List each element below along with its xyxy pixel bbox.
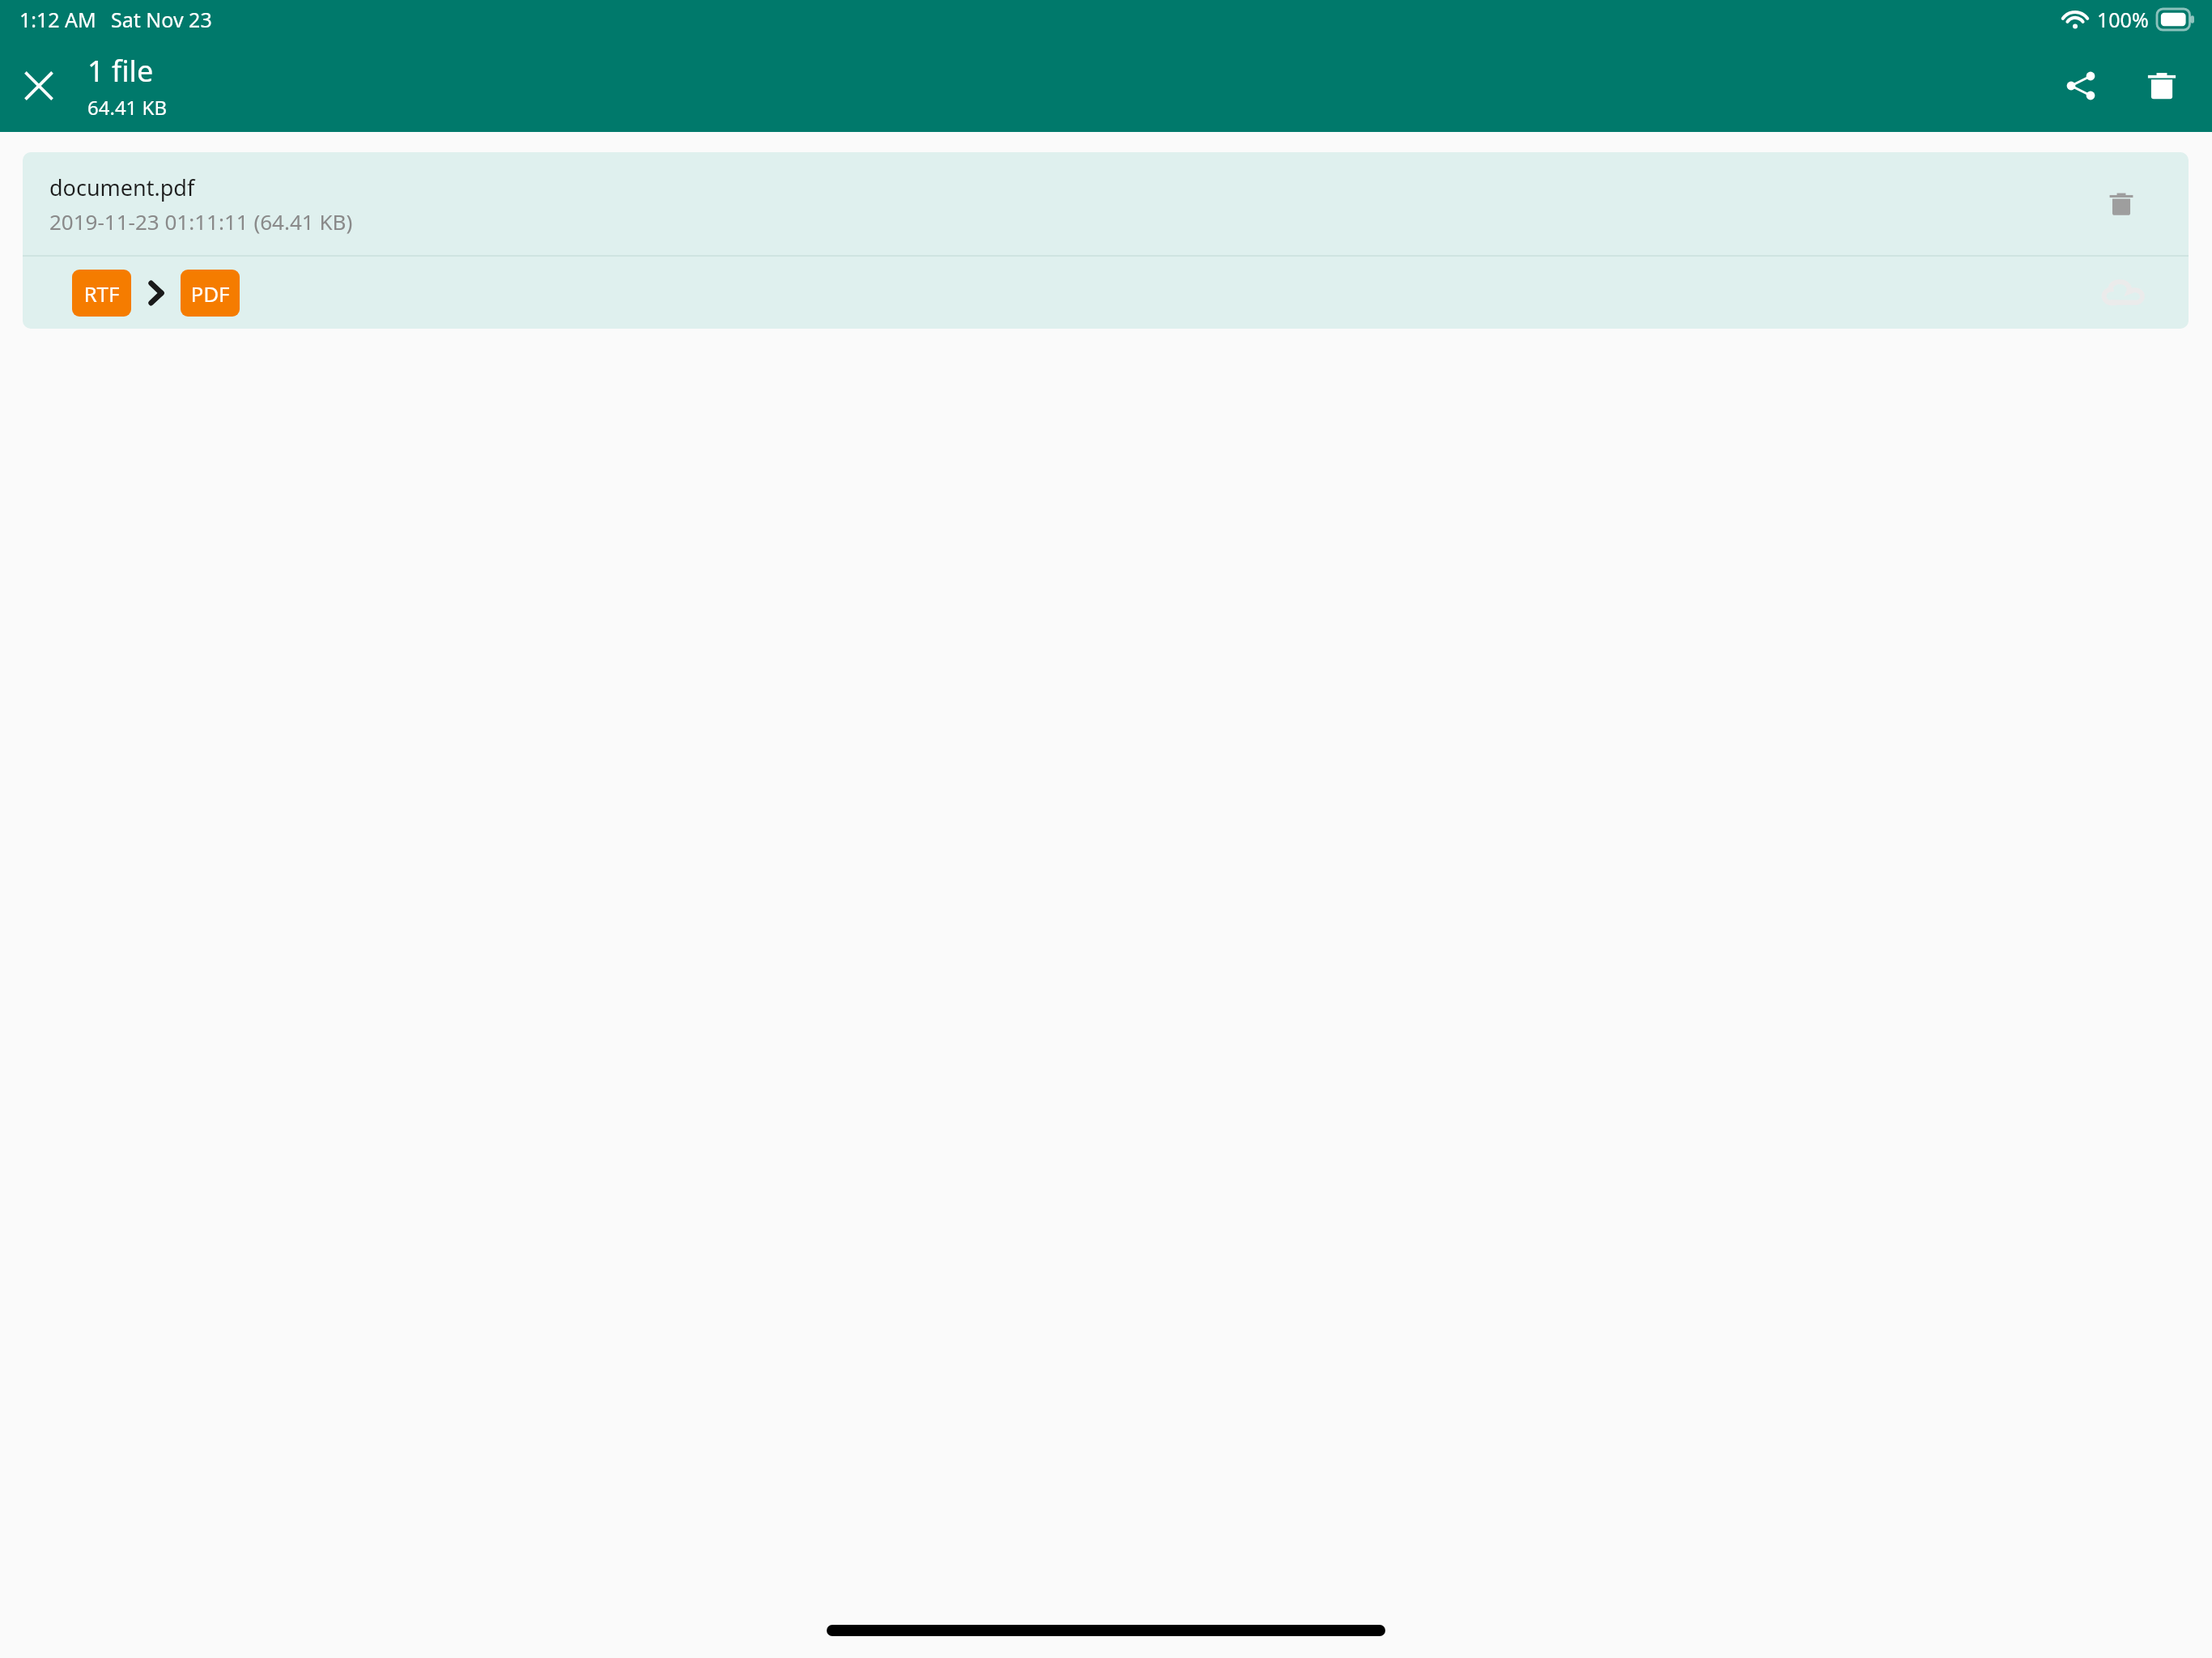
staticText: Sat Nov 23 [111, 6, 212, 33]
staticText: 1 file [87, 51, 154, 91]
button[interactable]: Upload to cloud [2093, 263, 2153, 323]
button[interactable]: RTF [72, 270, 131, 317]
staticText: PDF [190, 279, 230, 308]
staticText: document.pdf [49, 172, 195, 202]
staticText: 1:12 AM [19, 6, 96, 33]
staticText: RTF [83, 279, 120, 308]
staticText: 100% [2097, 6, 2149, 33]
button[interactable]: PDF [181, 270, 240, 317]
button[interactable]: Delete all [2123, 47, 2201, 125]
staticText: 64.41 KB [87, 94, 168, 121]
button[interactable]: Close [0, 47, 78, 125]
button[interactable]: Delete file [2091, 174, 2151, 234]
button[interactable]: document.pdf [23, 152, 2189, 255]
button[interactable]: Share [2042, 47, 2120, 125]
staticText: 2019-11-23 01:11:11 (64.41 KB) [49, 207, 353, 236]
